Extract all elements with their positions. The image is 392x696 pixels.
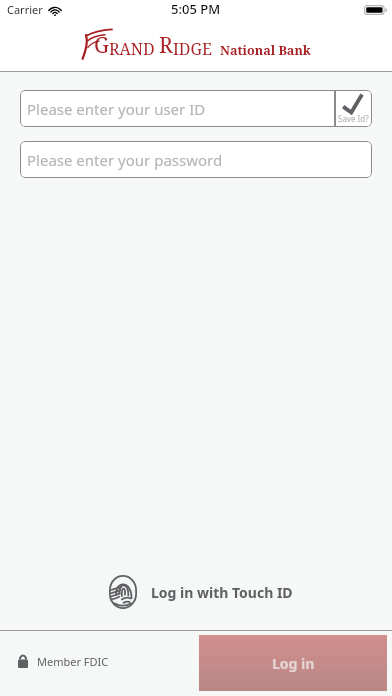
- staticText: Save Id?: [338, 113, 369, 124]
- staticText: RAND: [109, 38, 155, 60]
- button[interactable]: Log in with Touch ID: [0, 575, 392, 609]
- staticText: 5:05 PM: [171, 0, 221, 18]
- staticText: Log in with Touch ID: [151, 583, 293, 602]
- staticText: Member FDIC: [37, 654, 109, 669]
- staticText: National Bank: [220, 42, 311, 59]
- button[interactable]: Please enter your user ID: [20, 90, 335, 127]
- button[interactable]: Save Id: [335, 90, 372, 127]
- button[interactable]: Please enter your password: [20, 141, 372, 178]
- staticText: G: [94, 31, 109, 60]
- staticText: IDGE: [173, 38, 212, 60]
- staticText: Please enter your user ID: [27, 99, 206, 119]
- staticText: R: [159, 31, 173, 60]
- staticText: Please enter your password: [27, 150, 223, 170]
- staticText: Carrier: [7, 2, 43, 17]
- staticText: Log in: [272, 654, 315, 673]
- button[interactable]: Member FDIC: [18, 653, 109, 669]
- button[interactable]: Log in: [199, 635, 387, 691]
